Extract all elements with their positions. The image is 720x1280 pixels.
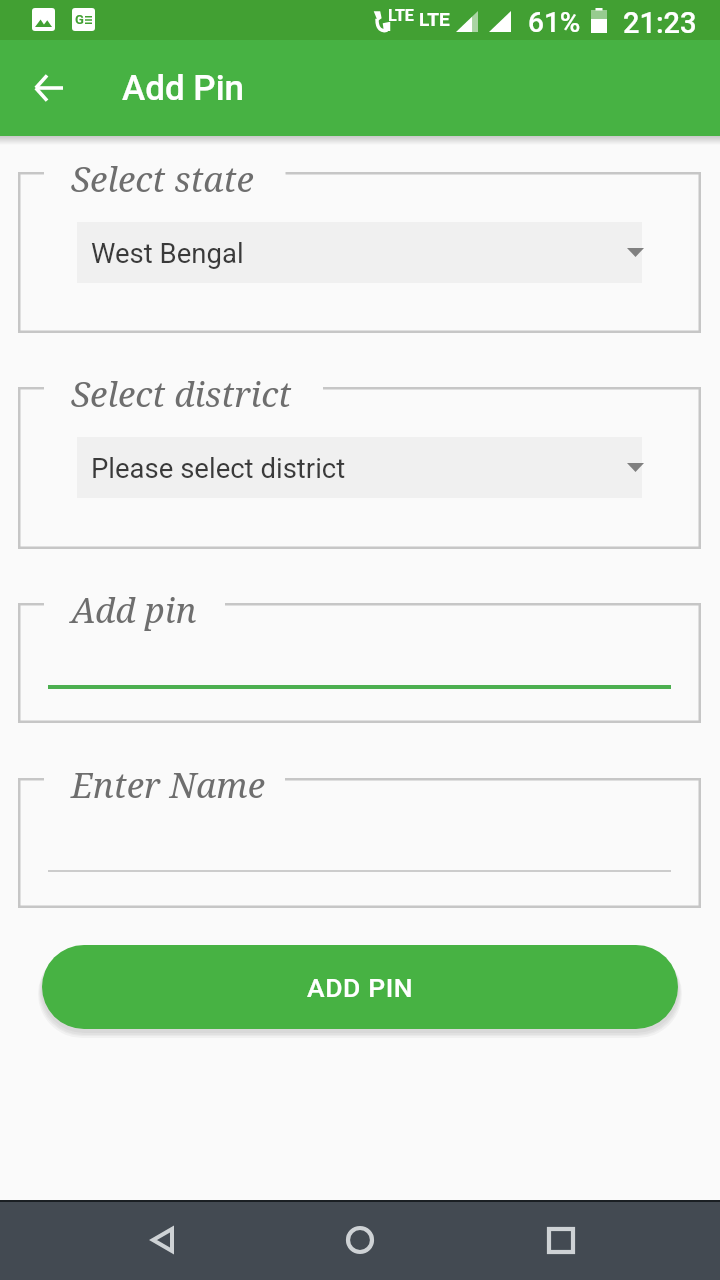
staticText: Add Pin [122,68,245,109]
staticText: LTE [388,6,414,25]
staticText: West Bengal [91,237,244,269]
staticText: Add pin [71,586,197,634]
staticText: ADD PIN [307,972,414,1003]
staticText: G [75,12,84,27]
button[interactable]: Home [328,1208,392,1272]
button[interactable]: West Bengal [77,222,642,283]
staticText: LTE [419,8,450,30]
button[interactable]: Recent apps [529,1208,593,1272]
button[interactable]: Back [130,1208,194,1272]
staticText: Select state [71,155,254,203]
staticText: 21:23 [623,6,697,40]
staticText: Enter Name [71,761,265,809]
staticText: Please select district [91,452,346,484]
staticText: 61% [528,6,581,39]
button[interactable]: ADD PIN [42,945,678,1029]
button[interactable]: Back [0,40,96,136]
staticText: Select district [71,370,292,418]
button[interactable]: Please select district [77,437,642,498]
